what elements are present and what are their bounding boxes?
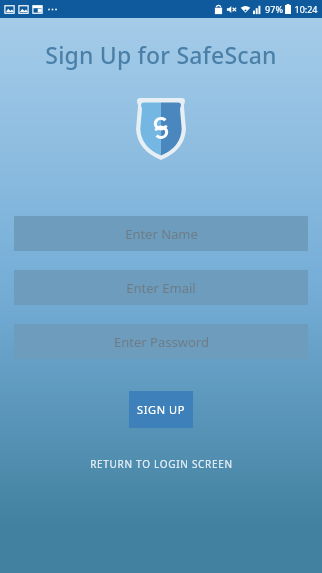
staticText: 10:24	[294, 3, 318, 15]
staticText: Enter Name	[125, 225, 198, 243]
staticText: RETURN TO LOGIN SCREEN	[90, 457, 233, 471]
button[interactable]: SIGN UP	[129, 391, 193, 428]
button[interactable]: Enter Name	[14, 216, 308, 251]
button[interactable]: Enter Email	[14, 270, 308, 305]
staticText: Enter Password	[114, 333, 209, 351]
staticText: Sign Up for SafeScan	[45, 39, 277, 70]
button[interactable]: Enter Password	[14, 324, 308, 359]
staticText: Enter Email	[126, 279, 196, 297]
staticText: SIGN UP	[137, 402, 185, 417]
button[interactable]: RETURN TO LOGIN SCREEN	[90, 457, 233, 471]
staticText: 97%	[265, 3, 283, 15]
